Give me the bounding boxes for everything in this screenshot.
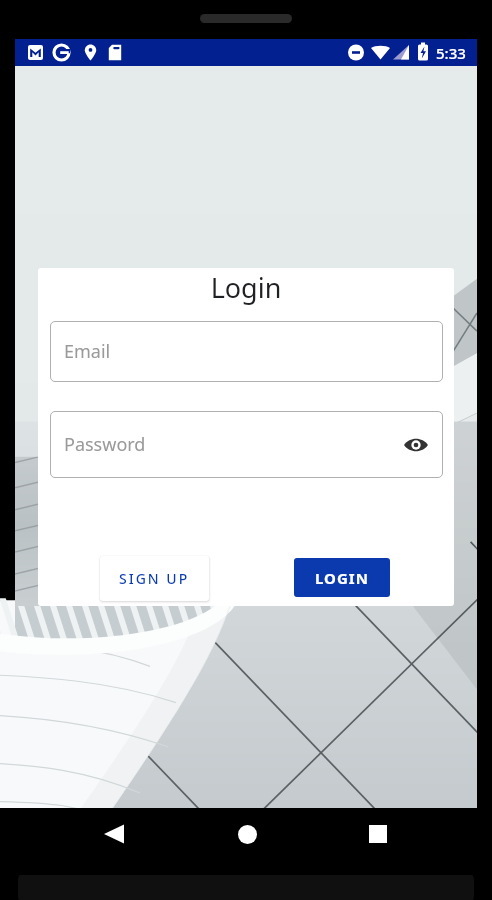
staticText: 5:33	[436, 43, 466, 63]
button[interactable]: Email	[50, 321, 443, 382]
button[interactable]: Back	[88, 808, 140, 860]
staticText: LOGIN	[315, 568, 369, 588]
button[interactable]: Recent apps	[352, 808, 404, 860]
staticText: SIGN UP	[119, 569, 190, 588]
button[interactable]: Show password	[403, 432, 429, 458]
button[interactable]: SIGN UP	[100, 556, 209, 601]
staticText: Login	[38, 269, 454, 306]
staticText: Password	[64, 432, 146, 457]
button[interactable]: Password	[50, 411, 443, 478]
staticText: Email	[64, 339, 111, 364]
button[interactable]: Home	[221, 808, 273, 860]
button[interactable]: LOGIN	[294, 558, 390, 597]
